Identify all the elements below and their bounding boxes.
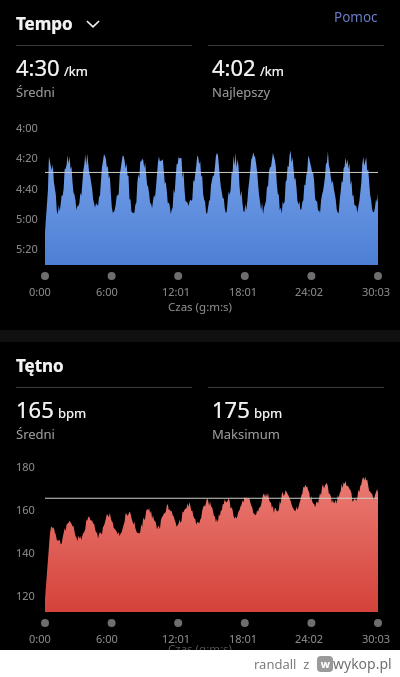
staticText: 18:01 (229, 631, 258, 646)
staticText: Czas (g:m:s) (0, 641, 400, 657)
staticText: 0:00 (29, 631, 51, 646)
staticText: 24:02 (295, 284, 324, 299)
button[interactable]: Tempo (16, 12, 105, 35)
staticText: 18:01 (229, 284, 258, 299)
staticText: 0:00 (29, 284, 51, 299)
staticText: bpm (254, 404, 283, 422)
staticText: Tętno (16, 354, 64, 377)
staticText: /km (260, 62, 284, 80)
staticText: /km (64, 62, 88, 80)
staticText: 4:20 (16, 150, 38, 165)
staticText: 30:03 (362, 631, 391, 646)
staticText: 12:01 (162, 631, 191, 646)
staticText: 180 (16, 459, 35, 474)
staticText: Maksimum (212, 425, 280, 443)
staticText: Pomoc (334, 8, 378, 26)
staticText: W (321, 658, 330, 670)
staticText: 120 (16, 588, 35, 603)
staticText: 4:40 (16, 181, 38, 196)
staticText: 6:00 (96, 631, 118, 646)
staticText: 5:00 (16, 211, 38, 226)
staticText: 12:01 (162, 284, 191, 299)
staticText: 160 (16, 502, 35, 517)
staticText: 5:20 (16, 241, 38, 256)
staticText: Średni (16, 425, 55, 443)
staticText: 24:02 (295, 631, 324, 646)
staticText: 165 (16, 394, 54, 424)
staticText: Czas (g:m:s) (0, 299, 400, 315)
staticText: 30:03 (362, 284, 391, 299)
staticText: wykop.pl (333, 654, 392, 673)
staticText: 4:30 (16, 52, 60, 82)
staticText: Średni (16, 83, 55, 101)
staticText: 140 (16, 545, 35, 560)
staticText: 4:02 (212, 52, 256, 82)
staticText: 175 (212, 394, 250, 424)
staticText: 4:00 (16, 120, 38, 135)
staticText: bpm (58, 404, 87, 422)
button[interactable]: Tętno (16, 354, 68, 377)
staticText: 6:00 (96, 284, 118, 299)
button[interactable]: Pomoc (330, 4, 382, 30)
staticText: randall z (254, 655, 317, 673)
other: Expand (85, 19, 101, 29)
staticText: Najlepszy (212, 83, 271, 101)
staticText: Tempo (16, 12, 73, 35)
